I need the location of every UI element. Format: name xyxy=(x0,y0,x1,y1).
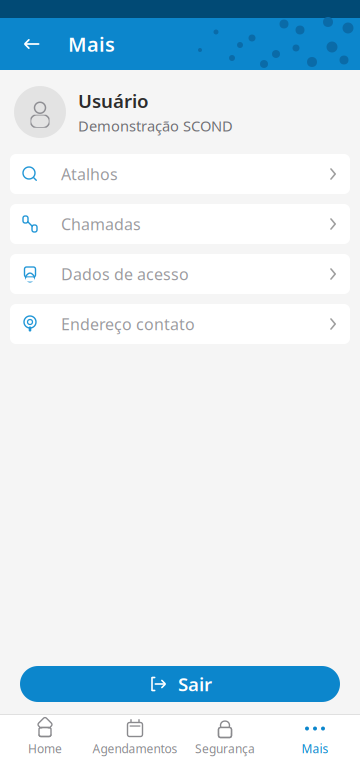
button[interactable]: Home xyxy=(0,715,90,759)
staticText: Endereço contato xyxy=(61,313,195,335)
staticText: Demonstração SCOND xyxy=(78,116,233,136)
staticText: Atalhos xyxy=(61,163,118,185)
button[interactable]: Chamadas xyxy=(10,204,350,244)
staticText: Sair xyxy=(178,672,212,696)
staticText: Dados de acesso xyxy=(61,263,189,285)
button[interactable]: Agendamentos xyxy=(90,715,180,759)
button[interactable]: Segurança xyxy=(180,715,270,759)
button[interactable]: Mais xyxy=(270,715,360,759)
staticText: Home xyxy=(28,740,62,756)
staticText: Usuário xyxy=(78,88,149,113)
button[interactable]: Back xyxy=(14,26,50,62)
staticText: Mais xyxy=(301,740,328,756)
button[interactable]: Dados de acesso xyxy=(10,254,350,294)
staticText: Chamadas xyxy=(61,213,141,235)
button[interactable]: Endereço contato xyxy=(10,304,350,344)
button[interactable]: Atalhos xyxy=(10,154,350,194)
staticText: Mais xyxy=(68,31,115,57)
staticText: Segurança xyxy=(195,740,255,756)
staticText: Agendamentos xyxy=(92,740,177,756)
button[interactable]: Sair xyxy=(20,666,340,702)
